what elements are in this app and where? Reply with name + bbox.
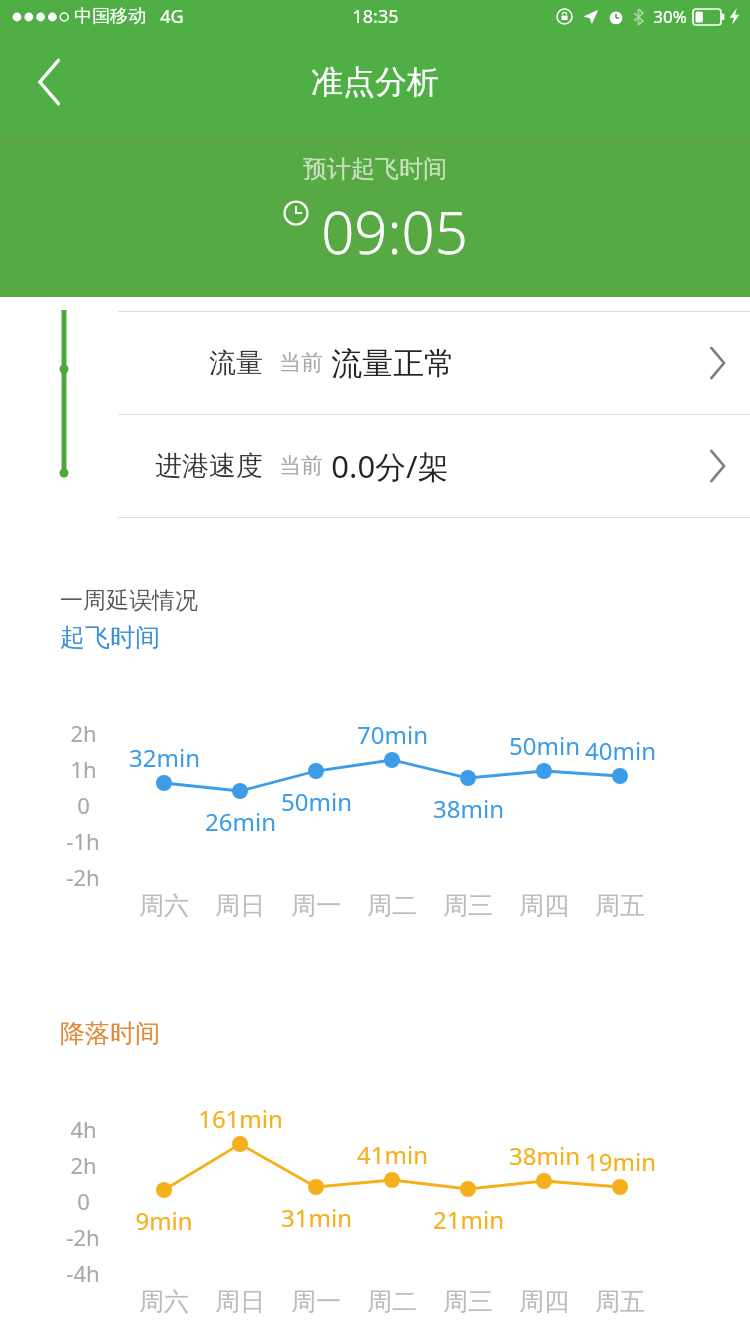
staticText: 32min [129, 741, 200, 774]
staticText: 4G [160, 4, 184, 29]
staticText: -1h [66, 826, 100, 856]
staticText: 周三 [443, 890, 493, 921]
staticText: 38min [433, 792, 504, 825]
staticText: 周日 [215, 890, 265, 921]
staticText: -2h [66, 862, 100, 892]
staticText: 周三 [443, 1286, 493, 1317]
staticText: 0.0分/架 [331, 445, 449, 487]
staticText: 流量 [209, 346, 263, 380]
staticText: 31min [281, 1201, 352, 1234]
staticText: 周日 [215, 1286, 265, 1317]
staticText: 161min [198, 1102, 283, 1135]
staticText: 0 [77, 790, 90, 820]
staticText: 当前 [279, 452, 323, 480]
staticText: 1h [70, 754, 97, 784]
staticText: -2h [66, 1222, 100, 1252]
staticText: 预计起飞时间 [303, 154, 447, 184]
staticText: 18:35 [352, 4, 399, 29]
staticText: 中国移动 [74, 5, 146, 28]
button[interactable]: 进港速度 [118, 415, 750, 517]
button[interactable]: Back [20, 52, 80, 112]
staticText: 2h [70, 718, 97, 748]
staticText: 周五 [595, 890, 645, 921]
staticText: 周四 [519, 1286, 569, 1317]
staticText: 周五 [595, 1286, 645, 1317]
staticText: 周六 [139, 890, 189, 921]
staticText: 周四 [519, 890, 569, 921]
staticText: 周一 [291, 890, 341, 921]
staticText: 09:05 [321, 192, 468, 271]
staticText: 周六 [139, 1286, 189, 1317]
staticText: 周二 [367, 890, 417, 921]
staticText: 周一 [291, 1286, 341, 1317]
staticText: 70min [357, 718, 428, 751]
staticText: 50min [281, 785, 352, 818]
button[interactable]: 流量 [118, 312, 750, 414]
staticText: 41min [357, 1138, 428, 1171]
staticText: 26min [205, 805, 276, 838]
staticText: 当前 [279, 349, 323, 377]
staticText: 50min [509, 729, 580, 762]
staticText: 19min [585, 1145, 656, 1178]
staticText: 进港速度 [155, 449, 263, 483]
staticText: 30% [653, 5, 687, 28]
staticText: 40min [585, 734, 656, 767]
staticText: 一周延误情况 [60, 586, 198, 615]
staticText: 流量正常 [331, 344, 455, 383]
staticText: 2h [70, 1150, 97, 1180]
staticText: 0 [77, 1186, 90, 1216]
staticText: 21min [433, 1203, 504, 1236]
staticText: 38min [509, 1139, 580, 1172]
staticText: 起飞时间 [60, 622, 160, 653]
staticText: -4h [66, 1258, 100, 1288]
staticText: 降落时间 [60, 1018, 160, 1049]
staticText: 9min [135, 1204, 193, 1237]
staticText: 4h [70, 1114, 97, 1144]
staticText: 周二 [367, 1286, 417, 1317]
staticText: 准点分析 [311, 62, 439, 102]
